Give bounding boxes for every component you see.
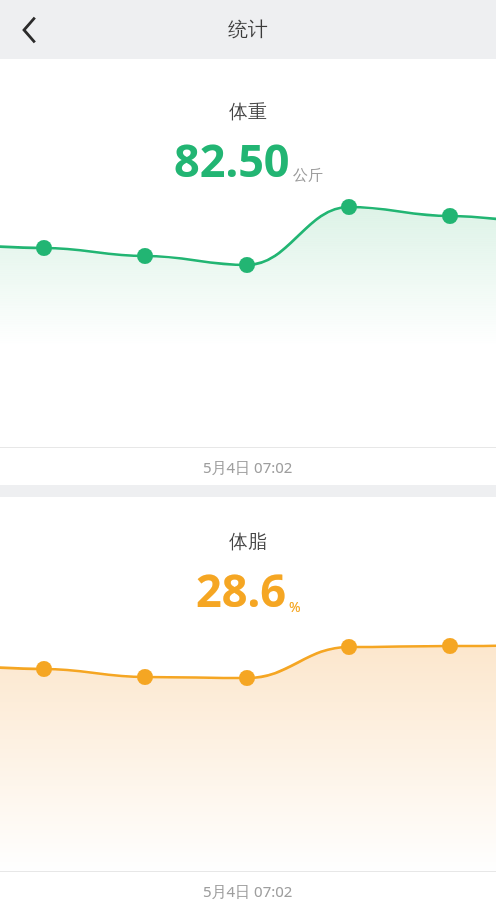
staticText: 5月4日 07:02 — [203, 881, 293, 901]
staticText: 公斤 — [293, 166, 323, 185]
staticText: 体重 — [229, 100, 267, 124]
button[interactable]: 返回 — [0, 0, 60, 59]
button[interactable]: 体脂 — [0, 497, 496, 909]
staticText: % — [289, 597, 301, 616]
staticText: 5月4日 07:02 — [203, 457, 293, 477]
staticText: 82.50 — [174, 129, 290, 190]
staticText: 28.6 — [196, 559, 286, 620]
button[interactable]: 体重 — [0, 59, 496, 485]
staticText: 统计 — [228, 17, 268, 42]
staticText: 体脂 — [229, 530, 267, 554]
